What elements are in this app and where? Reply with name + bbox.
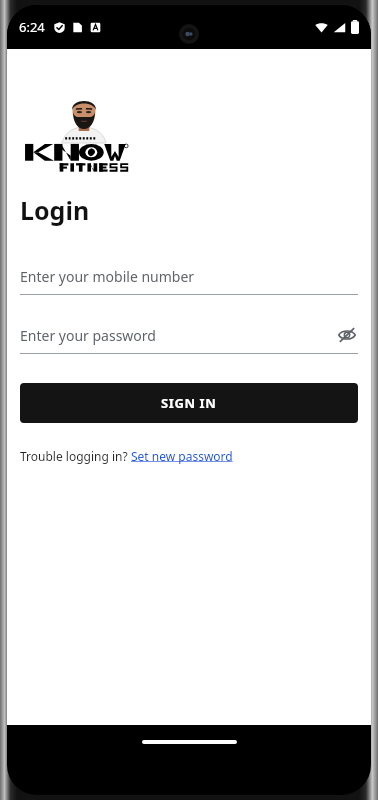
staticText: SIGN IN — [161, 394, 217, 412]
staticText: Enter your mobile number — [20, 267, 195, 286]
button[interactable]: Enter your mobile number — [20, 263, 358, 295]
button[interactable]: Show password — [336, 324, 358, 346]
button[interactable]: Enter your password — [20, 322, 358, 354]
button[interactable]: SIGN IN — [20, 383, 358, 423]
staticText: Enter your password — [20, 326, 156, 345]
staticText: Login — [20, 193, 90, 227]
staticText: Trouble logging in? — [20, 448, 131, 464]
staticText: Set new password — [131, 448, 233, 464]
staticText: 6:24 — [19, 18, 45, 36]
button[interactable]: Set new password — [131, 448, 233, 464]
